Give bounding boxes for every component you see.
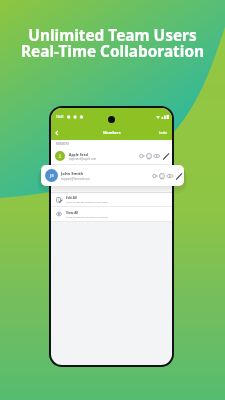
staticText: MEMBERS [56, 142, 69, 146]
staticText: 10:41 [56, 115, 64, 119]
button[interactable]: Invite [155, 128, 172, 138]
staticText: John Smith [61, 171, 84, 177]
button[interactable]: Apple Seed [51, 148, 172, 164]
button[interactable]: JS [41, 165, 184, 186]
staticText: Allow to view any receipts in the team [66, 215, 109, 218]
button[interactable]: View All [51, 207, 172, 221]
staticText: Allow to edit any receipts in the team [66, 200, 108, 203]
button[interactable]: Back [51, 127, 63, 139]
staticText: Allow to manage team members and setting… [66, 179, 118, 182]
staticText: View All [66, 211, 79, 215]
staticText: Unlimited Team Users Real-Time Collabora… [0, 25, 225, 62]
staticText: Members [103, 130, 121, 135]
staticText: Apple Seed [69, 152, 88, 157]
staticText: Manage Team [66, 175, 88, 179]
staticText: Invite [159, 131, 168, 135]
button[interactable]: Manage Team [51, 165, 172, 192]
staticText: appleseed@apple.com [69, 157, 97, 160]
staticText: Edit All [66, 196, 77, 200]
staticText: JS [50, 173, 54, 179]
button[interactable]: Edit All [51, 193, 172, 206]
staticText: support@fexcard.com [61, 177, 90, 181]
